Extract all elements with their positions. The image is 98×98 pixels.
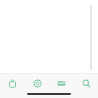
button[interactable]: Search xyxy=(76,79,96,93)
button[interactable]: Wallet xyxy=(51,79,71,93)
button[interactable]: Shop xyxy=(2,79,22,93)
button[interactable]: Explore xyxy=(27,79,47,93)
